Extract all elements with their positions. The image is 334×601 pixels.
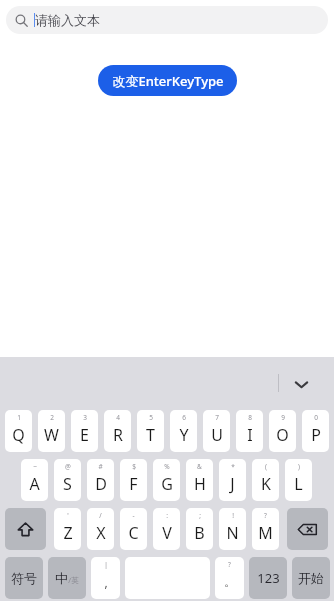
staticText: @: [65, 462, 71, 471]
staticText: |: [104, 560, 108, 569]
staticText: 1: [17, 413, 21, 422]
staticText: ): [298, 462, 300, 471]
staticText: ': [67, 511, 69, 520]
staticText: ?: [264, 511, 267, 520]
button[interactable]: 9: [269, 410, 296, 452]
button[interactable]: Backspace: [287, 508, 328, 550]
staticText: A: [29, 473, 40, 495]
staticText: Q: [12, 424, 25, 446]
staticText: &: [197, 462, 202, 471]
staticText: 7: [215, 413, 219, 422]
button[interactable]: &: [186, 459, 213, 501]
staticText: X: [96, 522, 106, 544]
button[interactable]: 开始: [292, 557, 330, 599]
button[interactable]: *: [219, 459, 246, 501]
staticText: Y: [179, 424, 189, 446]
staticText: B: [194, 522, 205, 544]
staticText: D: [95, 473, 107, 495]
staticText: K: [261, 473, 271, 495]
button[interactable]: |: [91, 557, 120, 599]
staticText: 123: [257, 569, 280, 587]
button[interactable]: ?: [252, 508, 279, 550]
staticText: /英: [68, 575, 79, 585]
staticText: 8: [248, 413, 252, 422]
button[interactable]: -: [120, 508, 147, 550]
staticText: $: [132, 462, 136, 471]
staticText: C: [128, 522, 139, 544]
staticText: F: [129, 473, 138, 495]
staticText: N: [226, 522, 239, 544]
staticText: 开始: [298, 570, 324, 586]
button[interactable]: ': [54, 508, 81, 550]
staticText: #: [98, 462, 103, 471]
staticText: ?: [228, 560, 231, 569]
button[interactable]: 1: [5, 410, 32, 452]
staticText: ,: [104, 574, 108, 590]
button[interactable]: 改变EnterKeyType: [98, 65, 237, 96]
staticText: U: [211, 424, 223, 446]
staticText: *: [231, 462, 235, 471]
staticText: S: [63, 473, 72, 495]
button[interactable]: 0: [302, 410, 329, 452]
staticText: O: [276, 424, 289, 446]
staticText: J: [230, 473, 235, 495]
staticText: H: [194, 473, 206, 495]
button[interactable]: (: [252, 459, 279, 501]
staticText: 4: [116, 413, 120, 422]
button[interactable]: #: [87, 459, 114, 501]
staticText: -: [132, 511, 135, 520]
button[interactable]: 3: [71, 410, 98, 452]
button[interactable]: :: [153, 508, 180, 550]
staticText: 中: [55, 570, 68, 586]
staticText: ;: [199, 511, 201, 520]
button[interactable]: 5: [137, 410, 164, 452]
button[interactable]: ): [285, 459, 312, 501]
staticText: L: [294, 473, 303, 495]
button[interactable]: ?: [215, 557, 244, 599]
button[interactable]: 8: [236, 410, 263, 452]
button[interactable]: ~: [21, 459, 48, 501]
staticText: 请输入文本: [35, 12, 100, 28]
staticText: I: [247, 424, 253, 446]
staticText: 5: [149, 413, 153, 422]
button[interactable]: 123: [249, 557, 287, 599]
staticText: 。: [224, 574, 236, 589]
button[interactable]: /: [87, 508, 114, 550]
staticText: Z: [63, 522, 73, 544]
staticText: M: [258, 522, 273, 544]
staticText: E: [80, 424, 89, 446]
staticText: 6: [182, 413, 186, 422]
staticText: 2: [50, 413, 54, 422]
button[interactable]: 请输入文本: [6, 6, 328, 34]
staticText: 改变EnterKeyType: [112, 72, 224, 90]
staticText: V: [162, 522, 172, 544]
button[interactable]: %: [153, 459, 180, 501]
staticText: T: [146, 424, 155, 446]
button[interactable]: $: [120, 459, 147, 501]
staticText: G: [161, 473, 173, 495]
staticText: /: [99, 511, 102, 520]
button[interactable]: 7: [203, 410, 230, 452]
staticText: 9: [281, 413, 285, 422]
button[interactable]: 6: [170, 410, 197, 452]
staticText: %: [164, 462, 170, 471]
staticText: :: [166, 511, 168, 520]
button[interactable]: Shift: [5, 508, 46, 550]
button[interactable]: 符号: [5, 557, 43, 599]
staticText: P: [311, 424, 321, 446]
button[interactable]: 中: [48, 557, 86, 599]
staticText: W: [44, 424, 59, 446]
staticText: ~: [33, 462, 37, 471]
staticText: (: [265, 462, 267, 471]
button[interactable]: 4: [104, 410, 131, 452]
staticText: R: [113, 424, 123, 446]
button[interactable]: 2: [38, 410, 65, 452]
button[interactable]: !: [219, 508, 246, 550]
button[interactable]: ;: [186, 508, 213, 550]
staticText: 符号: [11, 570, 37, 586]
staticText: 3: [83, 413, 87, 422]
button[interactable]: @: [54, 459, 81, 501]
staticText: !: [232, 511, 234, 520]
button[interactable]: Hide keyboard: [288, 371, 314, 397]
